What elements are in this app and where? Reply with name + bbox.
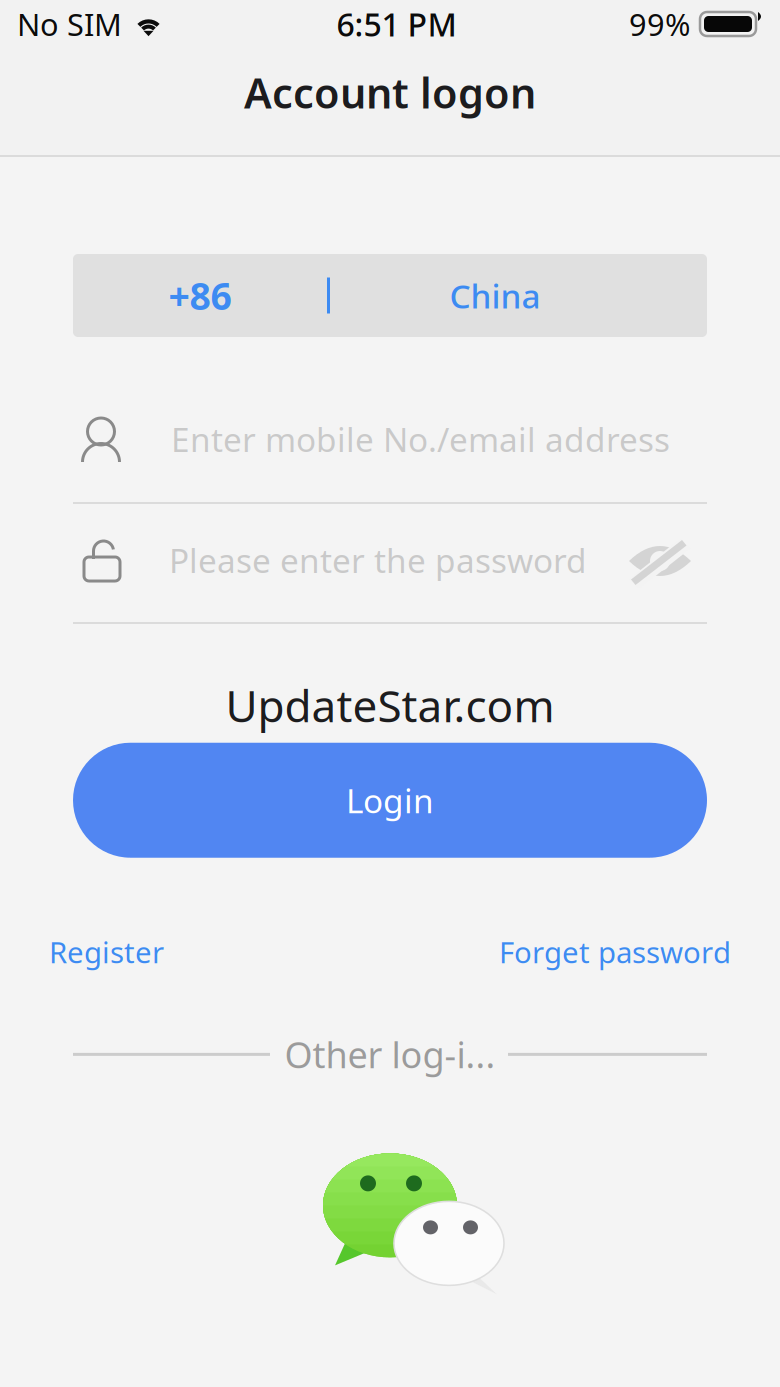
button[interactable]: Show password	[628, 541, 692, 579]
staticText: +86	[168, 271, 231, 320]
button[interactable]: Sign in with WeChat	[323, 1153, 505, 1294]
staticText: Please enter the password	[169, 538, 587, 582]
staticText: UpdateStar.com	[225, 676, 554, 734]
button[interactable]: Forget password	[499, 932, 731, 971]
staticText: China	[449, 273, 540, 318]
staticText: Enter mobile No./email address	[171, 417, 670, 461]
staticText: Account logon	[244, 65, 536, 120]
staticText: Login	[346, 778, 434, 822]
staticText: 6:51 PM	[336, 3, 456, 45]
staticText: 99%	[629, 4, 690, 44]
button[interactable]: Register	[49, 932, 164, 971]
staticText: Forget password	[499, 932, 731, 971]
button[interactable]: Login	[73, 743, 707, 858]
staticText: Other log-i...	[284, 1030, 495, 1078]
staticText: Register	[49, 932, 164, 971]
staticText: No SIM	[17, 4, 122, 44]
button[interactable]: +86	[73, 254, 707, 337]
